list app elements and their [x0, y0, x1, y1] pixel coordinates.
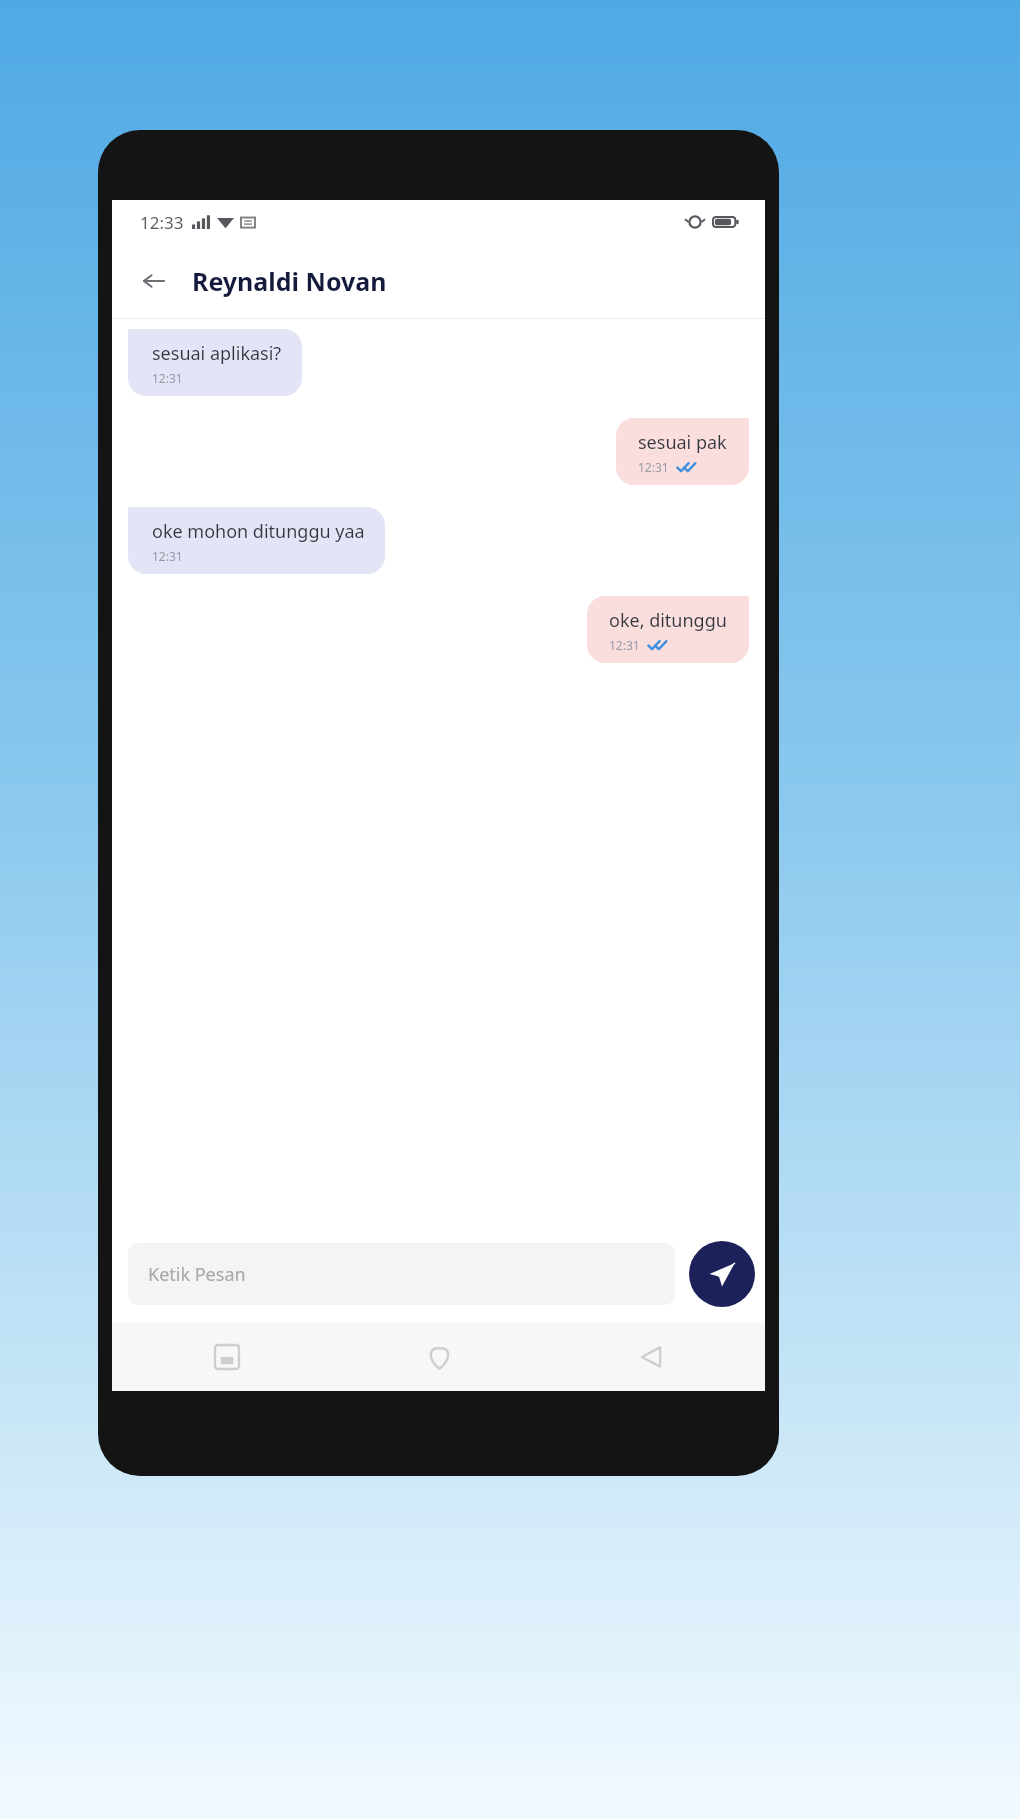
- button[interactable]: Send: [689, 1241, 755, 1307]
- staticText: 12:31: [609, 637, 640, 653]
- staticText: oke, ditunggu: [609, 608, 727, 633]
- button[interactable]: Back: [623, 1329, 679, 1385]
- button[interactable]: sesuai aplikasi?: [128, 329, 302, 396]
- staticText: 12:31: [152, 548, 183, 564]
- button[interactable]: oke mohon ditunggu yaa: [128, 507, 385, 574]
- staticText: sesuai aplikasi?: [152, 341, 282, 366]
- staticText: oke mohon ditunggu yaa: [152, 519, 365, 544]
- button[interactable]: Ketik Pesan: [128, 1243, 675, 1305]
- staticText: 12:33: [140, 211, 184, 234]
- button[interactable]: Back: [130, 257, 178, 305]
- button[interactable]: oke, ditunggu: [587, 596, 749, 663]
- staticText: 12:31: [638, 459, 669, 475]
- staticText: Reynaldi Novan: [192, 264, 387, 298]
- button[interactable]: sesuai pak: [616, 418, 749, 485]
- staticText: sesuai pak: [638, 430, 727, 455]
- button[interactable]: Recent apps: [199, 1329, 255, 1385]
- staticText: 12:31: [152, 370, 183, 386]
- button[interactable]: Home: [411, 1329, 467, 1385]
- staticText: Ketik Pesan: [148, 1262, 246, 1287]
